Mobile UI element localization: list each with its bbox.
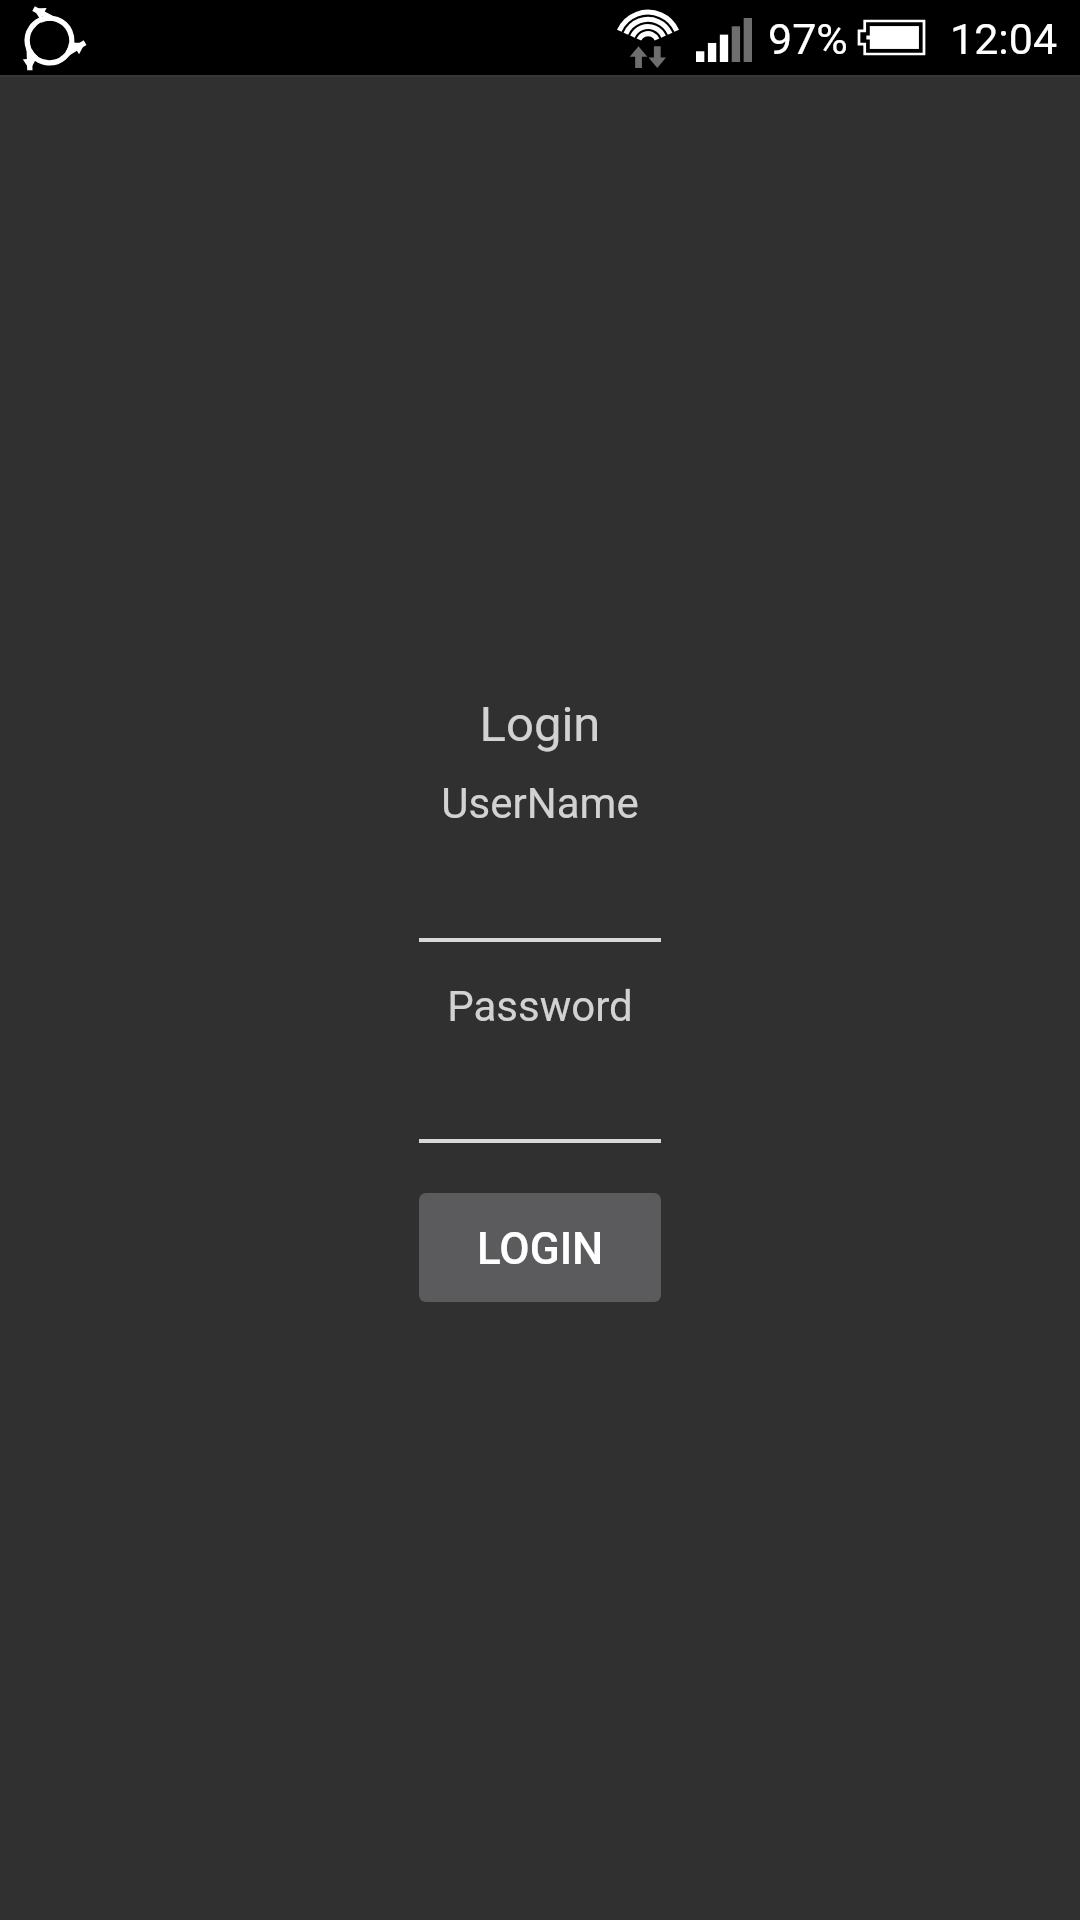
staticText: 12:04: [950, 14, 1058, 64]
staticText: LOGIN: [477, 1223, 604, 1275]
staticText: Password: [419, 982, 661, 1031]
button[interactable]: LOGIN: [419, 1193, 661, 1302]
other: Mobile signal strength: [696, 18, 752, 62]
other: Battery 97 percent: [859, 21, 924, 54]
other: Sync: [18, 9, 81, 72]
staticText: 97%: [768, 14, 848, 64]
button[interactable]: Password: [419, 982, 661, 1143]
staticText: Login: [419, 696, 661, 753]
button[interactable]: UserName: [419, 779, 661, 942]
staticText: UserName: [419, 779, 661, 828]
other: Wi-Fi connected: [616, 7, 680, 68]
